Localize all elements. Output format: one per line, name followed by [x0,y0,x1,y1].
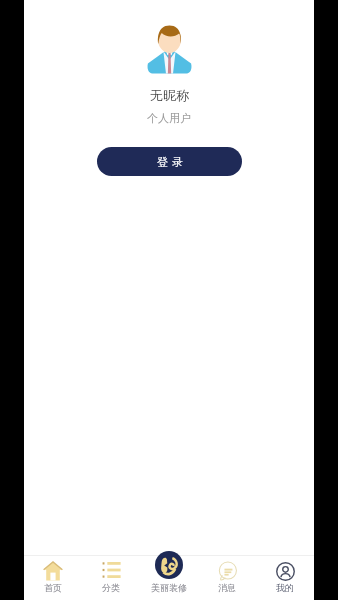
other: 美丽装修 [155,552,183,578]
other: 消息 [218,562,237,581]
button[interactable]: 分类 [82,555,140,600]
other: 分类 [102,561,121,581]
other: 首页 [43,561,63,581]
button[interactable]: 消息 [198,555,256,600]
staticText: 首页 [44,582,62,593]
staticText: 美丽装修 [151,582,187,593]
staticText: 无昵称 [150,87,189,103]
button[interactable]: 我的 [256,555,314,600]
staticText: 消息 [218,582,236,593]
button[interactable]: 登录 [97,147,242,176]
other: 我的 [276,562,295,581]
staticText: 我的 [276,582,294,593]
staticText: 分类 [102,582,120,593]
staticText: 个人用户 [147,111,191,125]
staticText: 登录 [155,155,185,169]
button[interactable]: 美丽装修 [140,555,198,600]
button[interactable]: 首页 [24,555,82,600]
